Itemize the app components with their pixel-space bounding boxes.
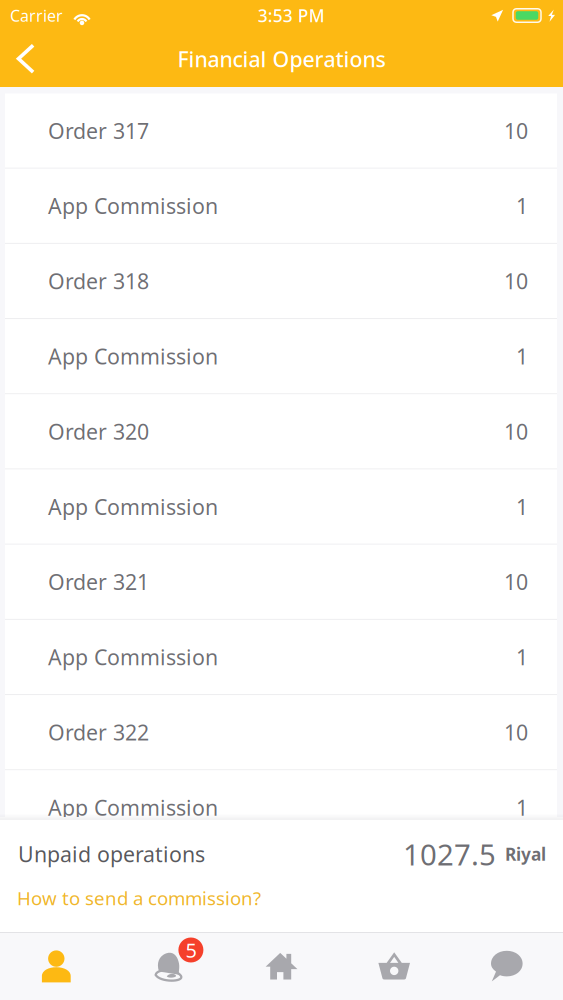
staticText: 1027.5	[403, 834, 496, 873]
staticText: Order 323	[48, 868, 149, 897]
staticText: App Commission	[48, 192, 218, 220]
button[interactable]: App Commission	[5, 169, 557, 244]
button[interactable]: Messages	[450, 932, 563, 1000]
staticText: Order 317	[48, 116, 149, 145]
staticText: Financial Operations	[177, 45, 385, 73]
staticText: 10	[504, 116, 528, 145]
button[interactable]: How to send a commission?	[0, 883, 275, 913]
staticText: 5	[185, 937, 196, 963]
staticText: How to send a commission?	[17, 886, 261, 910]
staticText: 10	[504, 568, 528, 596]
staticText: App Commission	[48, 342, 218, 370]
staticText: Order 318	[48, 267, 149, 295]
button[interactable]: App Commission	[5, 770, 557, 845]
button[interactable]: Order 317	[5, 93, 557, 169]
staticText: 10	[504, 417, 528, 445]
staticText: 1	[516, 793, 528, 821]
staticText: 1	[516, 342, 528, 370]
staticText: Riyal	[505, 842, 546, 865]
staticText: Carrier	[10, 5, 63, 26]
button[interactable]: Notifications	[113, 932, 225, 1000]
staticText: App Commission	[48, 492, 218, 521]
staticText: 1	[516, 643, 528, 671]
staticText: 1	[516, 192, 528, 220]
staticText: Order 320	[48, 417, 149, 445]
staticText: 10	[504, 718, 528, 746]
staticText: Order 322	[48, 718, 149, 746]
staticText: 3:53 PM	[258, 4, 325, 27]
button[interactable]: Cart	[338, 932, 450, 1000]
button[interactable]: Order 323	[5, 845, 557, 921]
button[interactable]: Profile	[0, 932, 113, 1000]
button[interactable]: Order 321	[5, 545, 557, 620]
staticText: App Commission	[48, 793, 218, 821]
button[interactable]: App Commission	[5, 620, 557, 695]
button[interactable]: Order 322	[5, 695, 557, 770]
staticText: App Commission	[48, 643, 218, 671]
button[interactable]: Order 318	[5, 244, 557, 319]
button[interactable]: Order 320	[5, 394, 557, 469]
button[interactable]: Home	[225, 932, 338, 1000]
button[interactable]: App Commission	[5, 469, 557, 545]
button[interactable]: Back	[0, 31, 52, 87]
staticText: 10	[504, 267, 528, 295]
staticText: 1	[516, 492, 528, 521]
staticText: Order 321	[48, 568, 149, 596]
button[interactable]: App Commission	[5, 319, 557, 394]
staticText: Unpaid operations	[18, 840, 205, 868]
